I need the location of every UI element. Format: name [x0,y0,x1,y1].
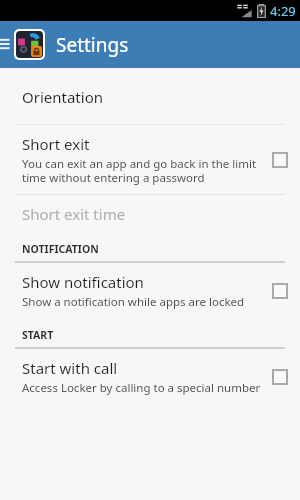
button[interactable]: Short exit [0,125,300,194]
staticText: You can exit an app and go back in the l… [22,156,262,185]
button[interactable]: Show notification [0,263,300,319]
staticText: Short exit time [22,204,126,224]
button[interactable]: Open navigation drawer [0,21,12,68]
staticText: Show notification [22,272,144,292]
staticText: Start with call [22,358,118,378]
staticText: Orientation [22,87,103,107]
staticText: NOTIFICATION [22,242,99,256]
staticText: Settings [56,32,129,58]
staticText: Short exit [22,134,90,154]
button[interactable]: Short exit time [0,195,300,233]
button[interactable]: App icon [16,31,43,58]
staticText: Access Locker by calling to a special nu… [22,380,261,396]
staticText: Show a notification while apps are locke… [22,294,245,310]
staticText: START [22,328,54,342]
button[interactable]: Orientation [0,78,300,116]
button[interactable]: Start with call [0,349,300,405]
staticText: 4:29 [270,2,296,20]
